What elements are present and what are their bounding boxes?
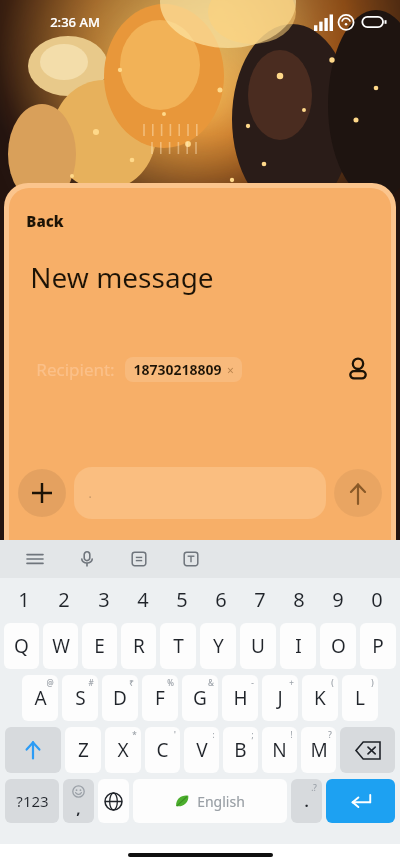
button[interactable]: Clipboard — [124, 544, 154, 574]
staticText: K — [314, 685, 326, 711]
button[interactable]: Backspace — [340, 727, 395, 773]
staticText: + — [289, 677, 294, 688]
staticText: Y — [213, 633, 224, 659]
staticText: 3 — [98, 586, 110, 613]
button[interactable]: ?123 — [5, 779, 59, 823]
staticText: G — [193, 685, 207, 711]
button[interactable]: T — [160, 623, 196, 669]
staticText: # — [88, 677, 94, 688]
staticText: 2 — [58, 586, 70, 613]
button[interactable]: Send — [334, 469, 382, 517]
staticText: O — [331, 633, 346, 659]
button[interactable]: 18730218809 — [125, 357, 242, 382]
button[interactable]: ) — [342, 675, 378, 721]
staticText: & — [208, 677, 214, 688]
button[interactable]: 1 — [4, 578, 44, 620]
button[interactable]: Change language — [98, 779, 129, 823]
button[interactable]: & — [182, 675, 218, 721]
button[interactable]: ' — [145, 727, 180, 773]
staticText: I — [295, 633, 302, 659]
staticText: ' — [174, 729, 176, 740]
staticText: ?123 — [16, 791, 49, 811]
button[interactable]: English — [133, 779, 287, 823]
button[interactable]: Voice input — [72, 544, 102, 574]
staticText: × — [227, 362, 234, 378]
button[interactable]: Y — [200, 623, 236, 669]
staticText: @ — [46, 677, 54, 688]
button[interactable]: 5 — [162, 578, 201, 620]
button[interactable]: 4 — [123, 578, 162, 620]
staticText: U — [251, 633, 265, 659]
button[interactable]: # — [62, 675, 98, 721]
staticText: 4 — [137, 586, 149, 613]
button[interactable]: + — [262, 675, 298, 721]
staticText: E — [94, 633, 105, 659]
button[interactable]: P — [360, 623, 396, 669]
button[interactable]: Choose contact — [338, 352, 378, 386]
button[interactable]: ₹ — [102, 675, 138, 721]
staticText: 2:36 AM — [50, 13, 100, 31]
staticText: .? — [311, 782, 317, 793]
button[interactable]: O — [320, 623, 356, 669]
button[interactable]: Emoji and comma — [63, 779, 94, 823]
staticText: Z — [78, 737, 89, 763]
staticText: D — [113, 685, 127, 711]
button[interactable]: 6 — [201, 578, 240, 620]
staticText: ( — [331, 677, 334, 688]
staticText: R — [133, 633, 145, 659]
button[interactable]: ( — [302, 675, 338, 721]
staticText: ! — [290, 729, 293, 740]
staticText: ? — [328, 729, 332, 740]
staticText: New message — [30, 258, 214, 296]
button[interactable]: - — [222, 675, 258, 721]
button[interactable]: .? — [291, 779, 322, 823]
button[interactable]: ! — [262, 727, 297, 773]
staticText: 7 — [254, 586, 266, 613]
staticText: N — [272, 737, 287, 763]
button[interactable]: 7 — [240, 578, 279, 620]
staticText: L — [355, 685, 365, 711]
button[interactable]: Menu — [20, 544, 50, 574]
button[interactable]: % — [142, 675, 178, 721]
button[interactable]: E — [82, 623, 117, 669]
staticText: 5 — [176, 586, 188, 613]
staticText: English — [197, 792, 245, 811]
button[interactable]: 2 — [44, 578, 84, 620]
staticText: C — [156, 737, 169, 763]
staticText: ₹ — [129, 677, 134, 688]
button[interactable]: 9 — [318, 578, 357, 620]
button[interactable]: @ — [22, 675, 58, 721]
staticText: , — [76, 798, 81, 818]
staticText: ) — [371, 677, 374, 688]
button[interactable]: ? — [301, 727, 336, 773]
staticText: V — [196, 737, 208, 763]
button[interactable]: 0 — [357, 578, 396, 620]
button[interactable]: 3 — [84, 578, 123, 620]
button[interactable]: Q — [4, 623, 39, 669]
staticText: 0 — [371, 586, 383, 613]
button[interactable]: : — [184, 727, 219, 773]
staticText: B — [234, 737, 247, 763]
button[interactable]: R — [121, 623, 156, 669]
button[interactable]: Text style — [176, 544, 206, 574]
button[interactable]: Shift — [5, 727, 61, 773]
button[interactable]: * — [105, 727, 141, 773]
button[interactable]: Z — [65, 727, 101, 773]
button[interactable]: 8 — [279, 578, 318, 620]
staticText: 18730218809 — [133, 360, 222, 379]
staticText: : — [212, 729, 215, 740]
button[interactable]: W — [43, 623, 78, 669]
button[interactable]: . — [74, 467, 326, 519]
button[interactable]: Enter — [326, 779, 395, 823]
staticText: * — [132, 729, 137, 740]
staticText: % — [167, 677, 174, 688]
button[interactable]: Back — [22, 207, 68, 235]
staticText: Recipient: — [36, 358, 115, 381]
button[interactable]: ; — [223, 727, 258, 773]
staticText: M — [310, 737, 328, 763]
button[interactable]: U — [240, 623, 276, 669]
staticText: H — [233, 685, 248, 711]
button[interactable]: Add attachment — [18, 469, 66, 517]
staticText: 6 — [215, 586, 227, 613]
button[interactable]: I — [280, 623, 316, 669]
